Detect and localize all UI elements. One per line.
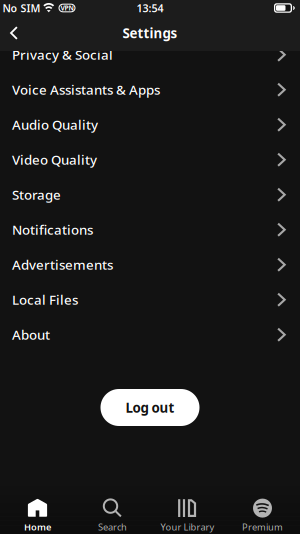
button[interactable]: Local Files [0,282,300,317]
staticText: No SIM [2,1,40,15]
staticText: Privacy & Social [12,46,113,63]
button[interactable]: Audio Quality [0,107,300,142]
button[interactable]: Search [75,499,150,533]
staticText: 13:54 [136,1,163,15]
staticText: Local Files [12,291,78,308]
staticText: Search [98,521,127,533]
staticText: Your Library [160,521,214,533]
button[interactable]: Advertisements [0,247,300,282]
staticText: VPN [60,4,73,12]
button[interactable]: Your Library [150,499,225,533]
staticText: Advertisements [12,256,113,273]
button[interactable]: Home [0,499,75,533]
staticText: Audio Quality [12,116,98,133]
staticText: About [12,326,50,343]
staticText: Storage [12,186,61,203]
button[interactable]: Back [0,18,28,48]
button[interactable]: About [0,317,300,352]
button[interactable]: Notifications [0,212,300,247]
staticText: Premium [242,521,283,533]
staticText: Video Quality [12,151,97,168]
button[interactable]: Premium [225,499,300,533]
staticText: Voice Assistants & Apps [12,81,160,98]
staticText: Settings [122,24,177,42]
staticText: Home [24,521,51,533]
button[interactable]: Voice Assistants & Apps [0,72,300,107]
button[interactable]: Storage [0,177,300,212]
staticText: Notifications [12,221,93,238]
staticText: Log out [125,399,174,416]
button[interactable]: Video Quality [0,142,300,177]
button[interactable]: Privacy & Social [0,37,300,72]
button[interactable]: Log out [100,389,199,426]
